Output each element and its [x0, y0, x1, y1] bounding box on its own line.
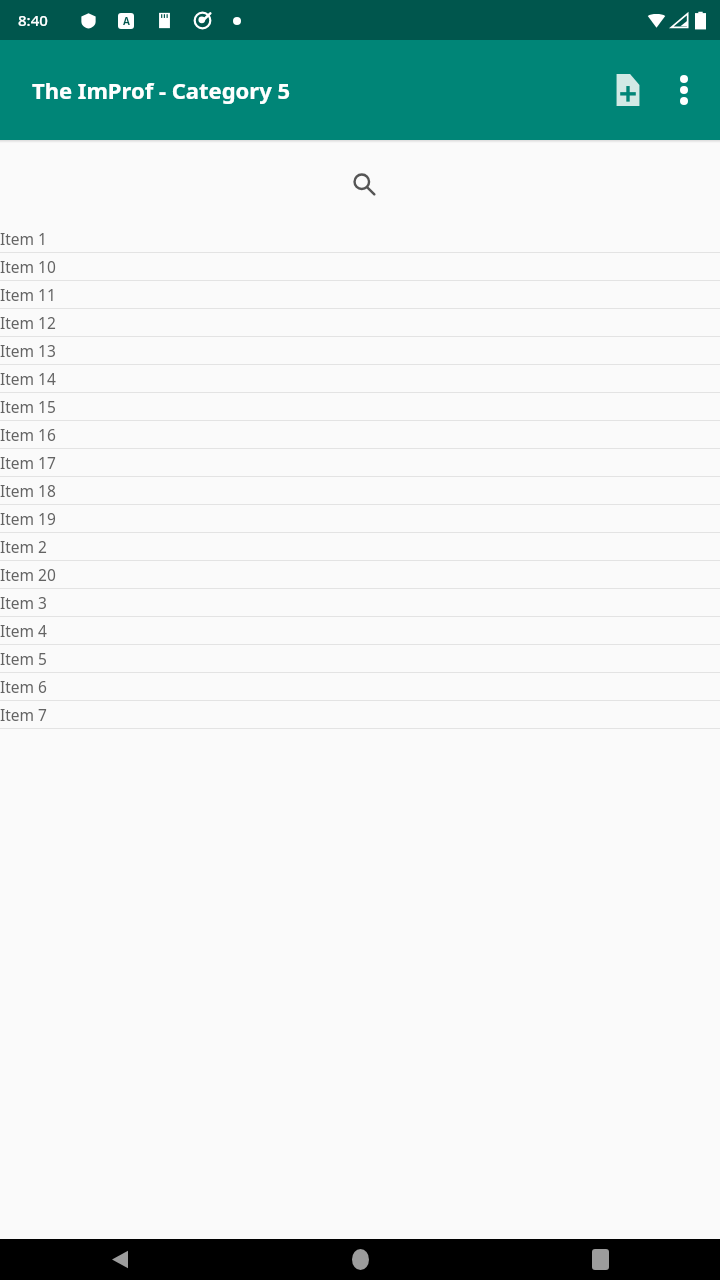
staticText: Item 5	[0, 648, 47, 669]
staticText: A	[123, 14, 130, 28]
button[interactable]: Item 15	[0, 393, 720, 421]
staticText: 8:40	[18, 10, 48, 30]
staticText: Item 3	[0, 592, 47, 613]
button[interactable]: Item 17	[0, 449, 720, 477]
button[interactable]: More options	[656, 62, 712, 118]
button[interactable]: Item 6	[0, 673, 720, 701]
staticText: Item 20	[0, 564, 56, 585]
button[interactable]: Item 7	[0, 701, 720, 729]
staticText: Item 17	[0, 452, 56, 473]
button[interactable]: Item 1	[0, 225, 720, 253]
button[interactable]: Item 14	[0, 365, 720, 393]
staticText: Item 4	[0, 620, 47, 641]
button[interactable]: Item 3	[0, 589, 720, 617]
staticText: Item 14	[0, 368, 56, 389]
staticText: Item 12	[0, 312, 56, 333]
staticText: Item 15	[0, 396, 56, 417]
staticText: Item 19	[0, 508, 56, 529]
button[interactable]: Item 2	[0, 533, 720, 561]
staticText: The ImProf - Category 5	[32, 75, 290, 105]
staticText: Item 2	[0, 536, 47, 557]
staticText: Item 1	[0, 228, 47, 249]
button[interactable]: Item 19	[0, 505, 720, 533]
button[interactable]: Item 12	[0, 309, 720, 337]
staticText: Item 7	[0, 704, 47, 725]
staticText: Item 18	[0, 480, 56, 501]
button[interactable]: Item 16	[0, 421, 720, 449]
staticText: Item 6	[0, 676, 47, 697]
button[interactable]: Home	[240, 1239, 480, 1280]
button[interactable]: Item 5	[0, 645, 720, 673]
button[interactable]: Item 13	[0, 337, 720, 365]
button[interactable]: Item 11	[0, 281, 720, 309]
button[interactable]: Back	[0, 1239, 240, 1280]
button[interactable]: Add file	[600, 62, 656, 118]
button[interactable]: Item 4	[0, 617, 720, 645]
staticText: Item 10	[0, 256, 56, 277]
staticText: Item 13	[0, 340, 56, 361]
staticText: Item 11	[0, 284, 56, 305]
button[interactable]: Item 20	[0, 561, 720, 589]
staticText: Item 16	[0, 424, 56, 445]
button[interactable]: Recent apps	[480, 1239, 720, 1280]
button[interactable]: Item 10	[0, 253, 720, 281]
button[interactable]: Search	[340, 160, 388, 208]
button[interactable]: Item 18	[0, 477, 720, 505]
